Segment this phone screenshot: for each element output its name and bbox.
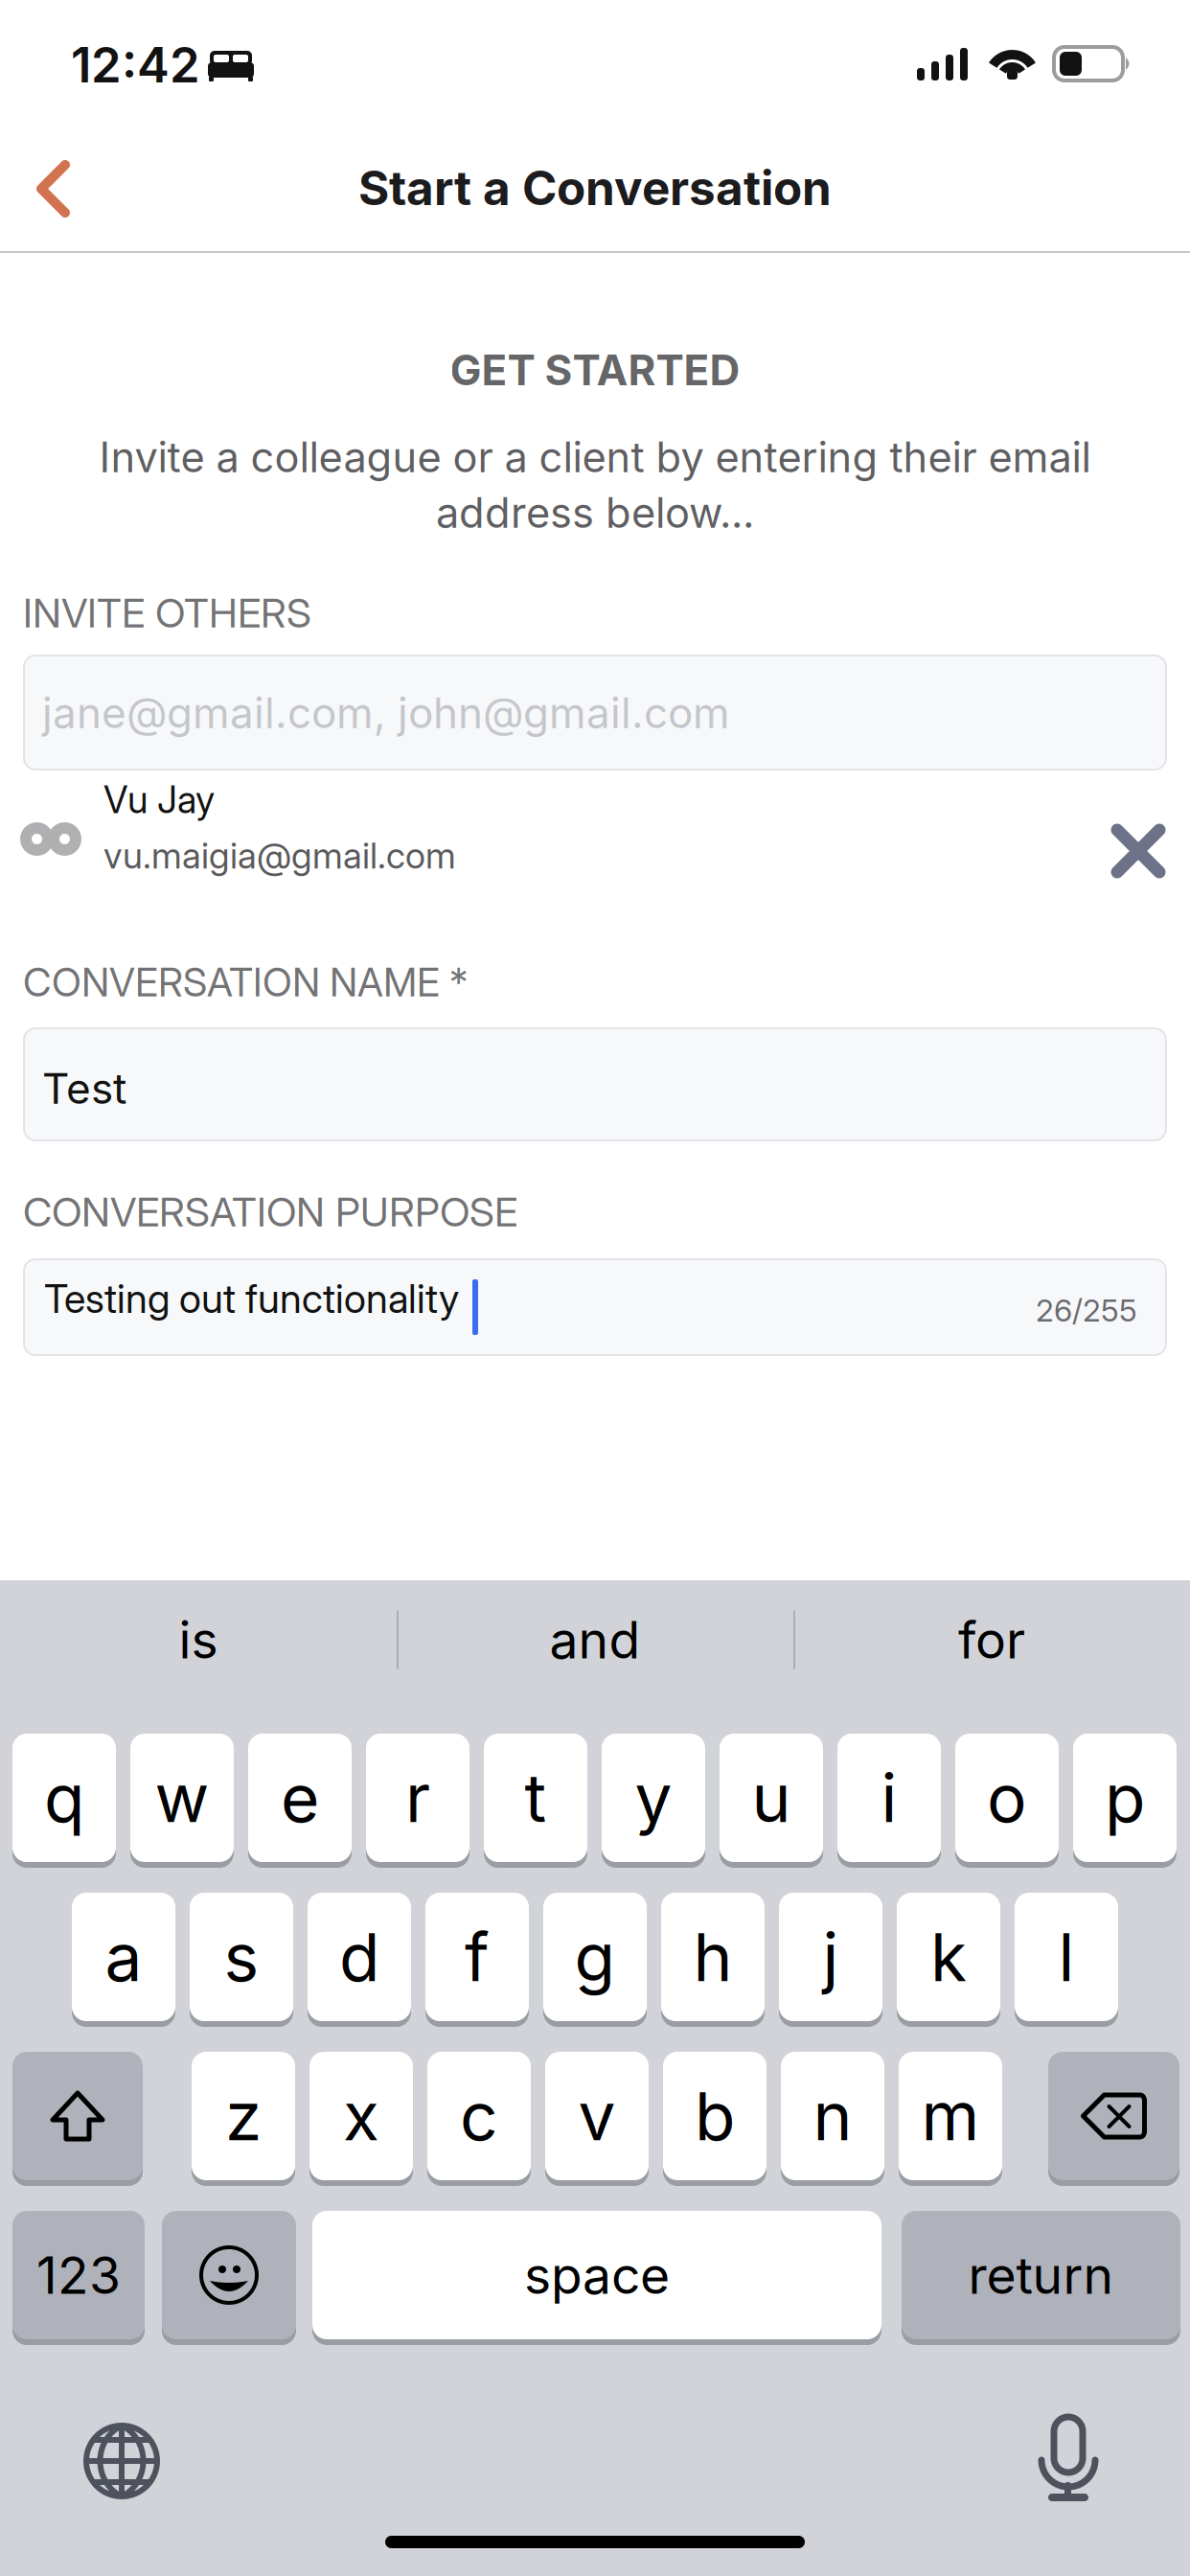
button[interactable]: j (779, 1893, 882, 2027)
staticText: GET STARTED (450, 344, 740, 395)
staticText: x (343, 2076, 379, 2156)
button[interactable]: space (312, 2211, 881, 2345)
staticText: is (179, 1609, 218, 1671)
button[interactable]: l (1015, 1893, 1118, 2027)
button[interactable]: Remove Vu Jay (1090, 805, 1186, 897)
staticText: d (339, 1917, 379, 1997)
button[interactable]: p (1073, 1734, 1177, 1868)
staticText: b (695, 2076, 735, 2156)
staticText: 26/255 (1036, 1292, 1137, 1329)
staticText: y (635, 1758, 672, 1838)
button[interactable]: y (602, 1734, 705, 1868)
button[interactable]: Test (24, 1028, 1166, 1140)
staticText: j (823, 1917, 839, 1997)
button[interactable]: Emoji (162, 2211, 296, 2345)
staticText: CONVERSATION PURPOSE (23, 1187, 517, 1236)
staticText: z (225, 2076, 262, 2156)
button[interactable]: h (661, 1893, 765, 2027)
staticText: n (813, 2076, 852, 2156)
button[interactable]: w (130, 1734, 234, 1868)
staticText: u (752, 1758, 791, 1838)
button[interactable]: z (192, 2052, 295, 2186)
staticText: t (525, 1758, 547, 1838)
button[interactable]: t (484, 1734, 587, 1868)
button[interactable]: return (902, 2211, 1180, 2345)
staticText: m (921, 2076, 980, 2156)
staticText: Test (42, 1063, 126, 1114)
button[interactable]: Switch keyboard (60, 2400, 183, 2522)
button[interactable]: x (309, 2052, 413, 2186)
staticText: k (930, 1917, 967, 1997)
staticText: address below... (436, 488, 754, 538)
staticText: 123 (36, 2244, 121, 2306)
button[interactable]: c (427, 2052, 531, 2186)
button[interactable]: e (248, 1734, 352, 1868)
button[interactable]: Dictate (1018, 2394, 1118, 2524)
button[interactable]: f (425, 1893, 529, 2027)
button[interactable]: b (663, 2052, 767, 2186)
button[interactable]: n (781, 2052, 884, 2186)
button[interactable]: Delete (1048, 2052, 1179, 2186)
staticText: v (578, 2076, 616, 2156)
staticText: Vu Jay (103, 777, 215, 822)
staticText: w (155, 1758, 209, 1838)
button[interactable]: d (308, 1893, 411, 2027)
staticText: r (405, 1758, 430, 1838)
staticText: g (574, 1917, 616, 1997)
staticText: o (987, 1758, 1027, 1838)
staticText: l (1058, 1917, 1075, 1997)
button[interactable]: v (545, 2052, 649, 2186)
button[interactable]: i (837, 1734, 941, 1868)
button[interactable]: jane@gmail.com, john@gmail.com (24, 655, 1166, 770)
staticText: c (460, 2076, 498, 2156)
button[interactable]: o (955, 1734, 1059, 1868)
staticText: s (224, 1917, 259, 1997)
button[interactable]: m (899, 2052, 1002, 2186)
button[interactable]: k (897, 1893, 1000, 2027)
button[interactable]: 123 (12, 2211, 145, 2345)
staticText: and (549, 1609, 641, 1671)
staticText: a (105, 1917, 142, 1997)
button[interactable]: and (397, 1586, 793, 1693)
staticText: return (968, 2244, 1114, 2306)
button[interactable]: for (793, 1586, 1190, 1693)
staticText: 12:42 (71, 35, 200, 94)
staticText: p (1105, 1758, 1145, 1838)
button[interactable]: is (0, 1586, 397, 1693)
staticText: Invite a colleague or a client by enteri… (99, 432, 1091, 482)
staticText: for (958, 1609, 1025, 1671)
button[interactable]: u (720, 1734, 823, 1868)
staticText: jane@gmail.com, john@gmail.com (42, 687, 730, 738)
staticText: q (44, 1758, 84, 1838)
staticText: Testing out functionality (44, 1275, 459, 1322)
staticText: vu.maigia@gmail.com (103, 834, 456, 877)
button[interactable]: g (543, 1893, 647, 2027)
staticText: space (524, 2244, 670, 2306)
staticText: e (281, 1758, 319, 1838)
button[interactable]: Testing out functionality (24, 1259, 1166, 1355)
button[interactable]: Back (0, 129, 107, 250)
button[interactable]: Shift (12, 2052, 143, 2186)
staticText: f (465, 1917, 490, 1997)
button[interactable]: s (190, 1893, 293, 2027)
staticText: CONVERSATION NAME * (23, 958, 468, 1006)
button[interactable]: r (366, 1734, 469, 1868)
button[interactable]: q (12, 1734, 116, 1868)
staticText: Start a Conversation (358, 159, 832, 216)
staticText: h (693, 1917, 732, 1997)
staticText: INVITE OTHERS (23, 588, 311, 637)
button[interactable]: a (72, 1893, 175, 2027)
staticText: i (881, 1758, 897, 1838)
